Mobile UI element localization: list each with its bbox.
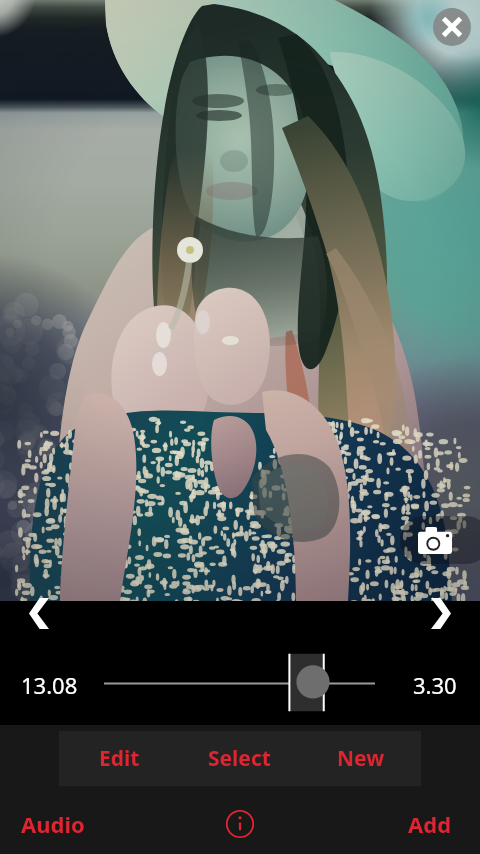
button[interactable]: Previous: [29, 598, 49, 629]
staticText: Add: [408, 809, 452, 839]
button[interactable]: Next: [431, 598, 451, 629]
button[interactable]: Select: [179, 731, 300, 786]
button[interactable]: Close: [433, 8, 471, 46]
staticText: 3.30: [413, 670, 457, 700]
button[interactable]: Audio: [6, 793, 100, 854]
staticText: New: [337, 744, 385, 773]
staticText: 13.08: [21, 670, 78, 700]
button[interactable]: Info: [210, 793, 270, 854]
staticText: Edit: [99, 744, 140, 773]
button[interactable]: Add: [386, 793, 474, 854]
staticText: Audio: [21, 809, 85, 839]
button[interactable]: Trim slider: [96, 648, 388, 716]
staticText: Select: [208, 744, 271, 773]
button[interactable]: New: [300, 731, 421, 786]
button[interactable]: Edit: [59, 731, 179, 786]
button[interactable]: Camera: [400, 516, 480, 564]
